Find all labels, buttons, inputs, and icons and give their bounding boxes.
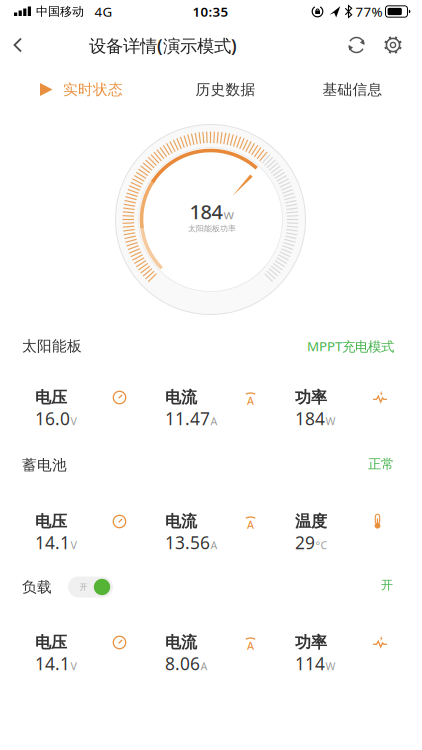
staticText: 77% [355, 3, 382, 20]
button[interactable]: 历史数据 [195, 80, 255, 98]
staticText: 太阳能板 [22, 337, 82, 355]
staticText: 电压 [35, 512, 67, 531]
staticText: 开 [381, 578, 393, 592]
staticText: 蓄电池 [22, 456, 67, 474]
staticText: 中国移动 [36, 4, 84, 19]
staticText: 实时状态 [63, 80, 123, 98]
staticText: 基础信息 [322, 80, 382, 98]
staticText: V [70, 659, 76, 673]
button[interactable]: 开 [68, 576, 113, 597]
staticText: 温度 [295, 512, 327, 531]
staticText: 114 [295, 652, 325, 675]
staticText: A [247, 638, 254, 653]
staticText: W [325, 659, 335, 673]
staticText: A [247, 517, 254, 532]
staticText: 正常 [368, 456, 394, 472]
staticText: 29 [295, 531, 315, 554]
staticText: 184 [189, 198, 222, 225]
staticText: 设备详情(演示模式) [89, 34, 237, 57]
staticText: A [210, 414, 217, 428]
button[interactable] [9, 33, 33, 57]
staticText: A [247, 393, 254, 408]
staticText: A [210, 538, 217, 552]
button[interactable] [345, 34, 367, 56]
staticText: 10:35 [192, 3, 228, 20]
staticText: 电流 [165, 388, 197, 407]
staticText: 14.1 [35, 652, 70, 675]
button[interactable] [381, 33, 405, 57]
staticText: 4G [94, 3, 112, 20]
staticText: 11.47 [165, 407, 210, 430]
staticText: V [70, 538, 76, 552]
staticText: V [70, 414, 76, 428]
staticText: 电流 [165, 512, 197, 531]
button[interactable]: 基础信息 [322, 80, 382, 98]
staticText: 太阳能板功率 [188, 224, 236, 233]
staticText: 16.0 [35, 407, 70, 430]
staticText: 电流 [165, 633, 197, 652]
staticText: 13.56 [165, 531, 210, 554]
staticText: 8.06 [165, 652, 200, 675]
staticText: 开 [79, 582, 87, 592]
button[interactable]: 实时状态 [39, 80, 123, 98]
staticText: 电压 [35, 633, 67, 652]
staticText: 负载 [22, 578, 52, 596]
staticText: w [223, 205, 233, 223]
staticText: 充电模式 [342, 338, 394, 355]
staticText: 功率 [295, 388, 327, 407]
staticText: 电压 [35, 388, 67, 407]
staticText: 184 [295, 407, 325, 430]
staticText: 历史数据 [195, 80, 255, 98]
staticText: W [325, 414, 335, 428]
staticText: MPPT [307, 337, 342, 355]
staticText: 14.1 [35, 531, 70, 554]
staticText: 功率 [295, 633, 327, 652]
staticText: A [200, 659, 207, 673]
staticText: °C [315, 538, 327, 552]
